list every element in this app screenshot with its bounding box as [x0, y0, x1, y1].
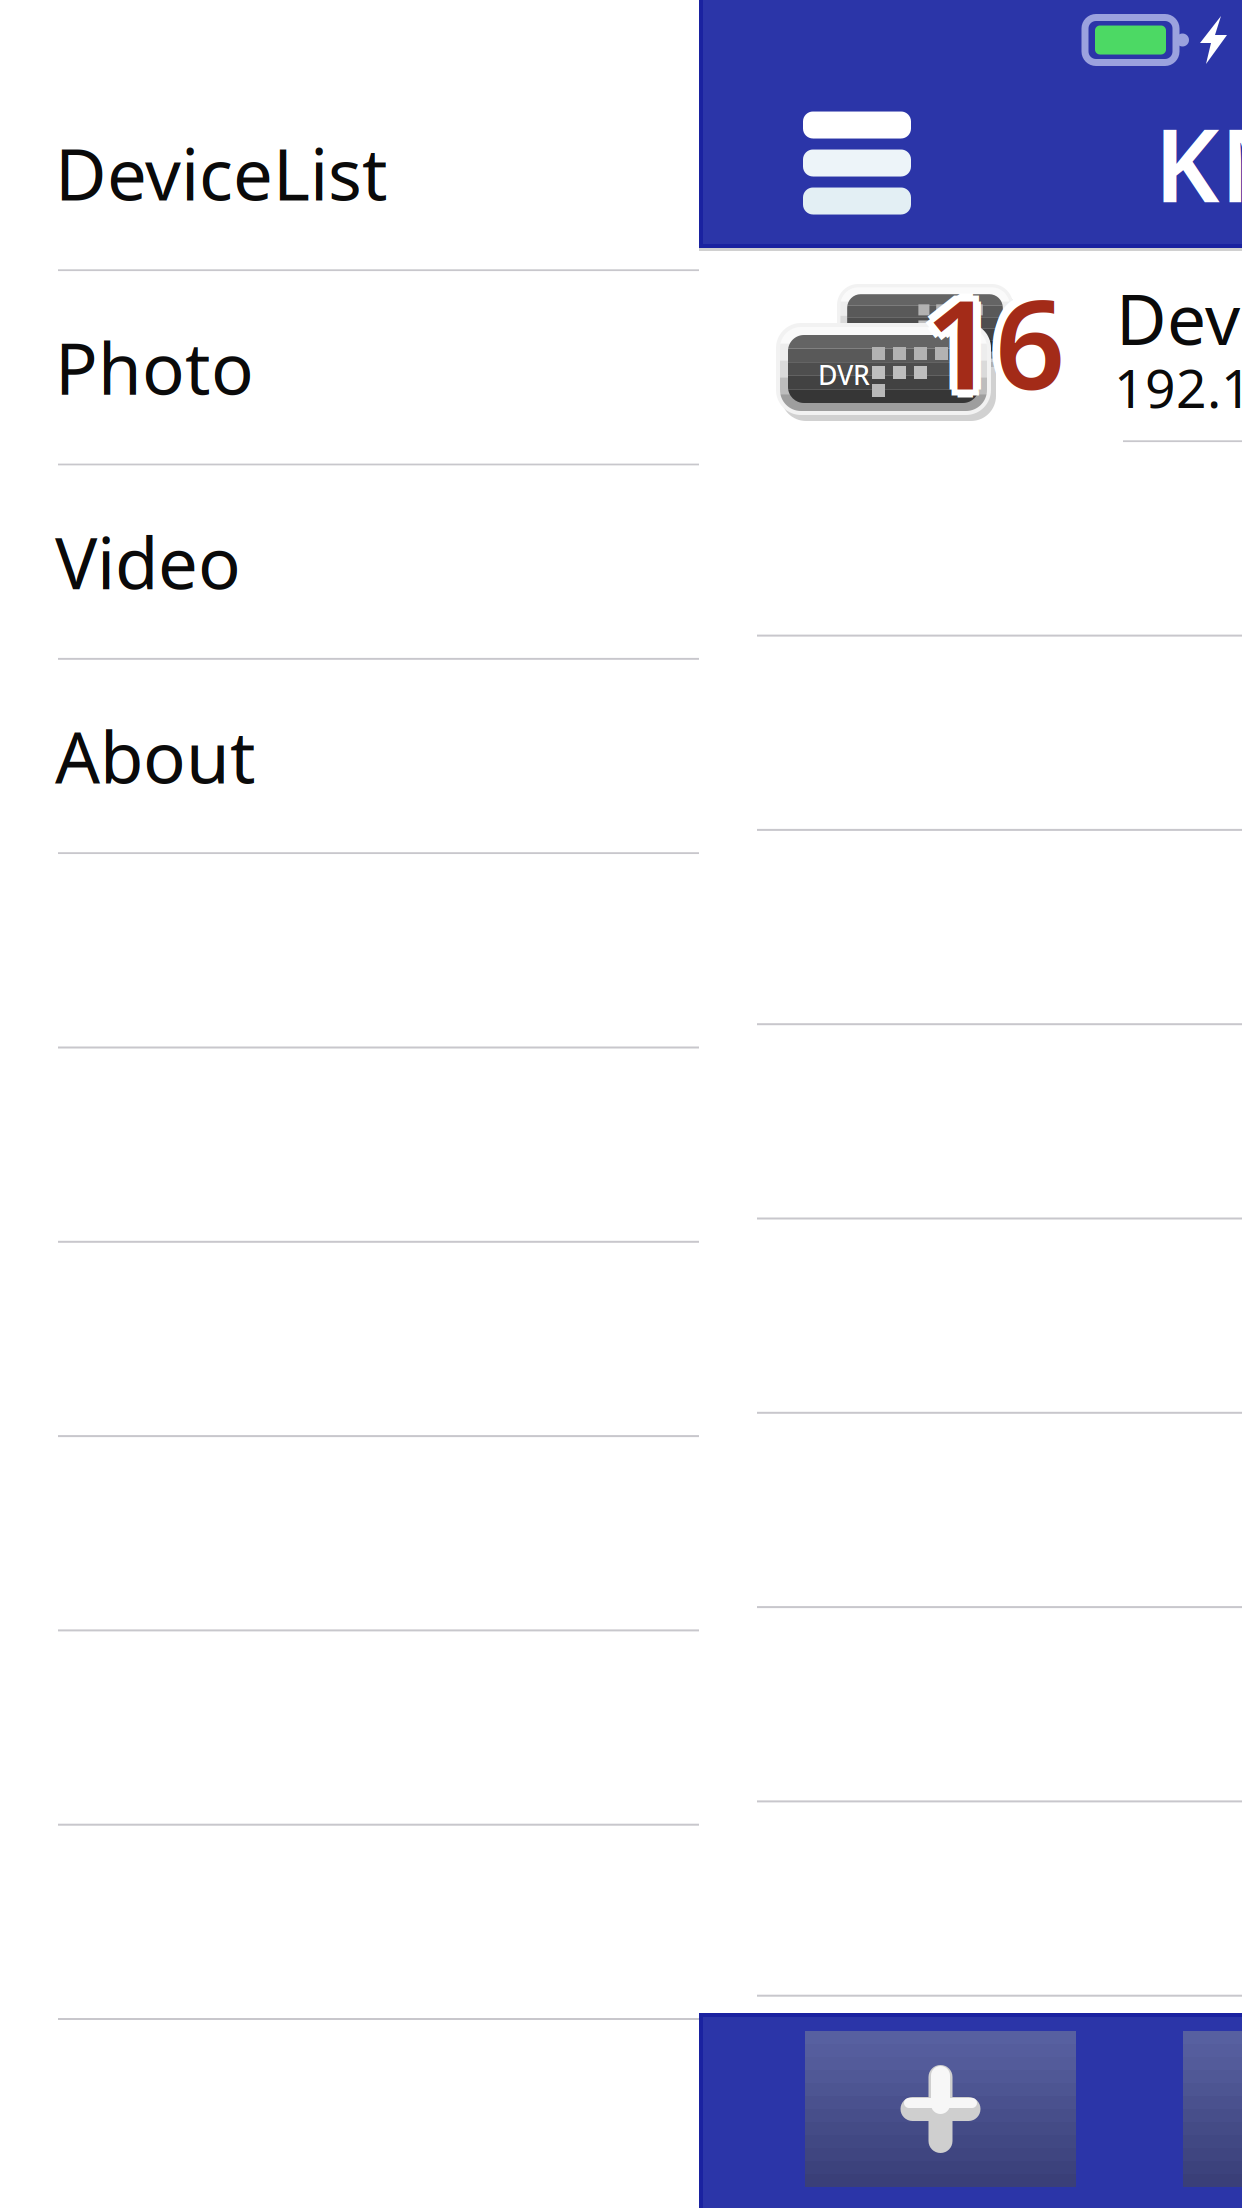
staticText: Photo: [55, 320, 254, 414]
staticText: 16: [931, 255, 1071, 417]
staticText: Device01: [1116, 272, 1242, 364]
staticText: Video: [55, 515, 241, 609]
button[interactable]: About: [0, 660, 699, 854]
staticText: 16: [917, 261, 1057, 423]
button[interactable]: Edit devices: [1183, 2031, 1242, 2187]
staticText: 16: [919, 267, 1059, 429]
staticText: 16: [925, 269, 1065, 431]
staticText: 192.168.1.100: [1114, 352, 1242, 423]
button[interactable]: Video: [0, 466, 699, 660]
staticText: 16: [931, 267, 1071, 429]
staticText: 16: [919, 255, 1059, 417]
staticText: 16: [925, 253, 1065, 415]
staticText: About: [55, 709, 256, 803]
button[interactable]: DVR: [699, 248, 1242, 442]
staticText: KMEye: [1154, 96, 1242, 230]
staticText: 16: [933, 261, 1073, 423]
button[interactable]: Menu: [771, 88, 943, 238]
staticText: DeviceList: [55, 126, 388, 220]
staticText: 16: [925, 261, 1065, 423]
staticText: DVR: [818, 357, 870, 392]
button[interactable]: Photo: [0, 271, 699, 466]
button[interactable]: Add device: [805, 2031, 1076, 2187]
button[interactable]: DeviceList: [0, 77, 699, 271]
